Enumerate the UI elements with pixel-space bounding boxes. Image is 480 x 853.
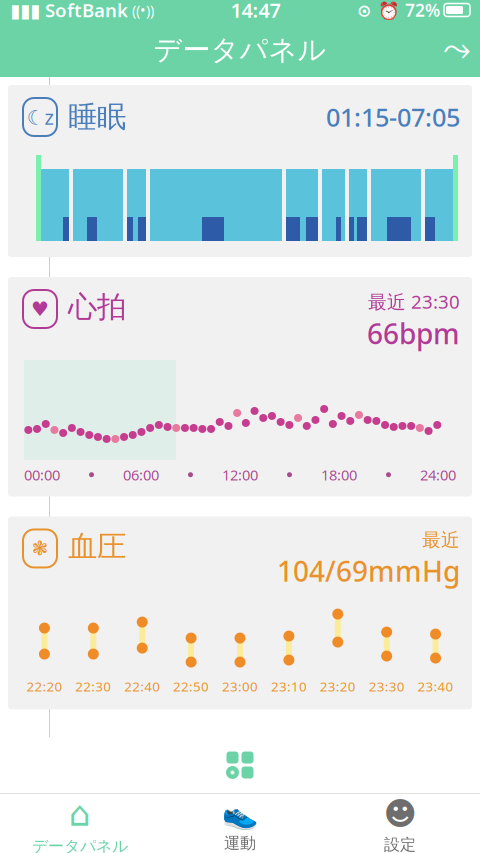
staticText: 24:00	[420, 465, 456, 484]
button[interactable]: 👟	[160, 794, 320, 853]
staticText: ⊙ ⏰ 72%	[357, 0, 440, 21]
button[interactable]: ♥	[8, 277, 472, 496]
staticText: データパネル	[153, 33, 326, 67]
staticText: 104/69mmHg	[277, 552, 460, 590]
button[interactable]: メニュー	[209, 737, 271, 793]
staticText: ☻	[383, 795, 416, 832]
button[interactable]: ❃	[8, 516, 472, 709]
staticText: ▮▮▮ SoftBank	[10, 0, 128, 22]
staticText: ❃	[31, 537, 48, 560]
staticText: 23:30	[369, 678, 405, 695]
staticText: 18:00	[321, 465, 357, 484]
staticText: ⌂	[69, 794, 91, 833]
staticText: 22:50	[173, 678, 209, 695]
staticText: 血圧	[68, 528, 126, 564]
staticText: 01:15-07:05	[326, 100, 460, 134]
staticText: ☾z	[26, 104, 53, 130]
staticText: 設定	[384, 835, 416, 853]
staticText: 睡眠	[68, 99, 126, 135]
staticText: 14:47	[230, 0, 280, 23]
staticText: 心拍	[68, 289, 126, 325]
staticText: 23:00	[222, 678, 258, 695]
staticText: ⤳	[443, 33, 471, 67]
button[interactable]: ☻	[320, 794, 480, 853]
button[interactable]: 共有	[434, 27, 480, 73]
staticText: ♥	[31, 298, 49, 320]
staticText: 22:20	[26, 678, 62, 695]
staticText: 23:10	[271, 678, 307, 695]
staticText: ((•))	[128, 0, 154, 20]
staticText: 最近	[422, 528, 460, 551]
button[interactable]: ⌂	[0, 794, 160, 853]
staticText: 00:00	[24, 465, 60, 484]
staticText: 12:00	[222, 465, 258, 484]
staticText: 66bpm	[367, 315, 460, 352]
staticText: 運動	[224, 833, 256, 853]
staticText: 23:20	[320, 678, 356, 695]
staticText: 06:00	[123, 465, 159, 484]
staticText: 👟	[221, 797, 258, 830]
staticText: 22:40	[124, 678, 160, 695]
staticText: 23:40	[418, 678, 454, 695]
staticText: データパネル	[32, 836, 128, 853]
button[interactable]: ☾z	[8, 85, 472, 257]
staticText: 22:30	[75, 678, 111, 695]
staticText: 最近 23:30	[368, 289, 460, 314]
